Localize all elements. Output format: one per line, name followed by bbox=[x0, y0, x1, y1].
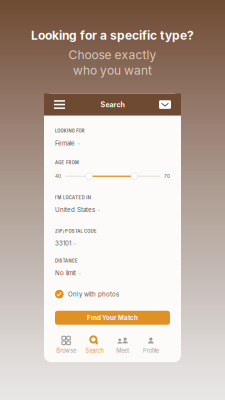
staticText: Choose exactly bbox=[68, 47, 156, 62]
staticText: No limit bbox=[55, 269, 76, 277]
staticText: Browse bbox=[56, 347, 76, 354]
button[interactable]: Find Your Match bbox=[55, 311, 170, 325]
button[interactable]: Only with photos bbox=[55, 290, 119, 298]
staticText: LOOKING FOR bbox=[55, 129, 85, 134]
staticText: Search bbox=[100, 100, 124, 109]
staticText: Profile bbox=[143, 347, 159, 354]
staticText: Female bbox=[55, 139, 75, 147]
button[interactable]: Browse bbox=[52, 334, 80, 356]
button[interactable]: Profile bbox=[137, 334, 165, 356]
staticText: 40 bbox=[55, 173, 61, 179]
button[interactable]: Messages bbox=[159, 100, 171, 110]
staticText: AGE FROM bbox=[55, 160, 79, 165]
staticText: 70 bbox=[164, 173, 170, 179]
staticText: Meet bbox=[116, 347, 129, 354]
staticText: who you want bbox=[73, 63, 152, 77]
button[interactable]: Menu bbox=[54, 100, 65, 110]
staticText: United States bbox=[55, 206, 95, 213]
staticText: Looking for a specific type? bbox=[31, 28, 194, 42]
staticText: I'M LOCATED IN bbox=[55, 195, 91, 200]
staticText: Find Your Match bbox=[87, 314, 138, 322]
staticText: ZIP/POSTAL CODE bbox=[55, 229, 97, 234]
staticText: Search bbox=[85, 347, 103, 354]
staticText: Only with photos bbox=[68, 290, 119, 298]
button[interactable]: Meet bbox=[108, 334, 137, 356]
staticText: 33101 bbox=[55, 239, 71, 247]
button[interactable]: Search bbox=[80, 334, 108, 356]
staticText: DISTANCE bbox=[55, 258, 78, 263]
